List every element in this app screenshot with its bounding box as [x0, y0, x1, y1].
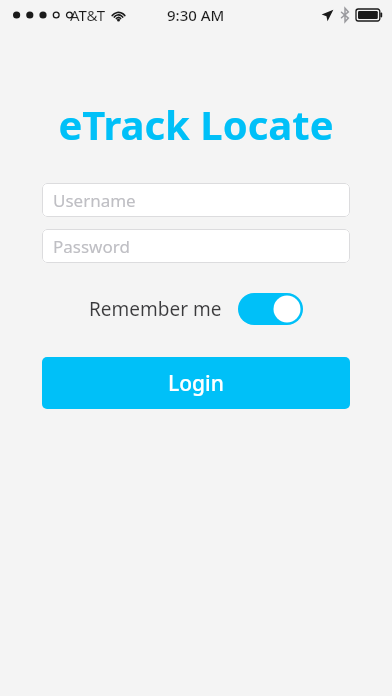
- button[interactable]: Username: [42, 183, 350, 217]
- staticText: Username: [53, 189, 136, 212]
- staticText: AT&T: [70, 5, 105, 25]
- button[interactable]: Remember me: [89, 288, 303, 330]
- staticText: 9:30 AM: [167, 5, 225, 25]
- staticText: Password: [53, 235, 130, 258]
- staticText: Login: [168, 369, 224, 398]
- button[interactable]: Remember me toggle, on: [238, 293, 303, 325]
- button[interactable]: Password: [42, 229, 350, 263]
- staticText: eTrack Locate: [58, 97, 334, 151]
- staticText: Remember me: [89, 296, 222, 322]
- button[interactable]: Login: [42, 357, 350, 409]
